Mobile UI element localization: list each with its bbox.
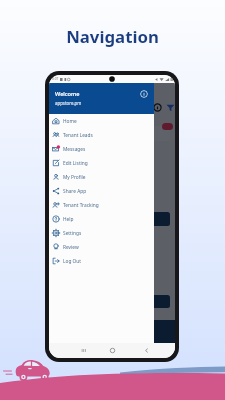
button[interactable]: Recents [79,346,88,355]
staticText: Messages [63,146,86,153]
staticText: Log Out [63,258,82,265]
button[interactable]: Back [142,346,151,355]
button[interactable]: My Profile [49,170,154,184]
button[interactable]: Messages [49,142,154,156]
button[interactable]: Info [153,103,162,112]
button[interactable]: Settings [49,226,154,240]
button[interactable]: Review [49,240,154,254]
staticText: Tenant Leads [63,132,93,139]
staticText: Review [63,244,79,251]
staticText: Navigation [66,25,159,48]
staticText: My Profile [63,174,86,181]
staticText: Tenant Tracking [63,202,99,209]
staticText: Help [63,216,74,223]
button[interactable]: Help [49,212,154,226]
staticText: Home [63,118,77,125]
button[interactable]: Tenant Tracking [49,198,154,212]
button[interactable]: Home [49,114,154,128]
staticText: 8:07 [52,77,59,81]
staticText: Settings [63,230,82,237]
button[interactable]: Filter [166,103,175,112]
button[interactable]: Tenant Leads [49,128,154,142]
staticText: Edit Listing [63,160,88,167]
button[interactable]: Info [140,90,148,98]
staticText: appstore.pm [55,100,82,106]
button[interactable]: Edit Listing [49,156,154,170]
button[interactable]: Log Out [49,254,154,268]
button[interactable]: Home [108,346,117,355]
staticText: Welcome [55,90,80,98]
button[interactable]: Share App [49,184,154,198]
staticText: Share App [63,188,87,195]
